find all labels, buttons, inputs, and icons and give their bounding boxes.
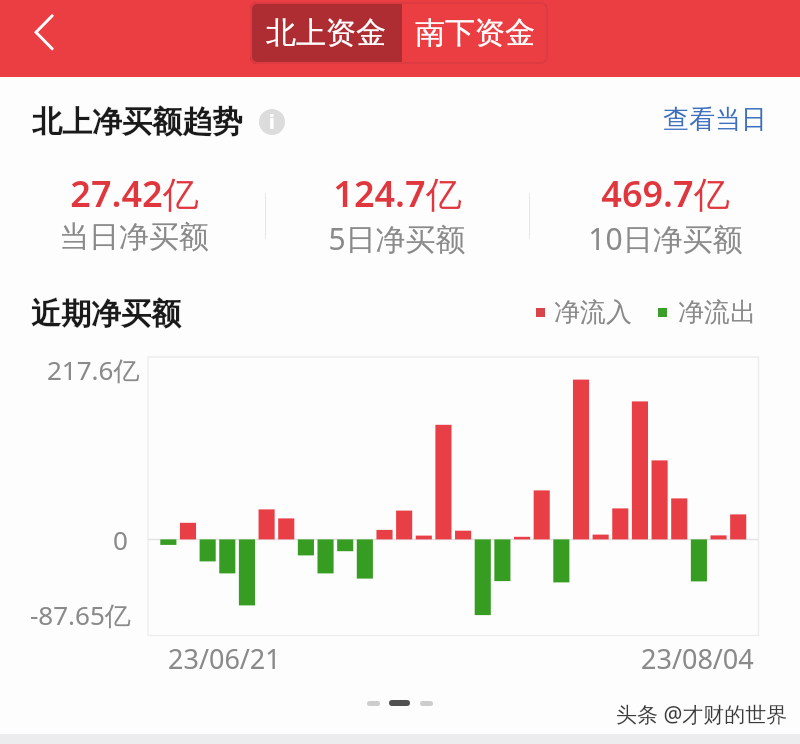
staticText: 当日净买额 bbox=[59, 218, 209, 256]
staticText: 124.7亿 bbox=[333, 169, 462, 218]
staticText: 查看当日 bbox=[663, 103, 767, 136]
button[interactable]: 北上净买额趋势 bbox=[32, 103, 242, 141]
staticText: 10日净买额 bbox=[588, 218, 743, 259]
button[interactable]: Page 1 bbox=[367, 701, 380, 706]
staticText: 27.42亿 bbox=[70, 169, 199, 218]
staticText: 北上资金 bbox=[266, 14, 386, 52]
button[interactable]: 124.7亿 bbox=[264, 169, 530, 259]
staticText: -87.65亿 bbox=[30, 597, 131, 633]
staticText: 净流入 bbox=[554, 296, 632, 329]
staticText: 南下资金 bbox=[415, 14, 535, 52]
button[interactable]: 查看当日 bbox=[663, 103, 767, 136]
button[interactable]: Back bbox=[12, 10, 57, 55]
staticText: i bbox=[269, 109, 275, 135]
staticText: 23/06/21 bbox=[168, 640, 281, 677]
staticText: 净流出 bbox=[678, 296, 756, 329]
button[interactable]: Page 3 bbox=[420, 701, 433, 706]
button[interactable]: Info bbox=[259, 109, 285, 135]
staticText: 23/08/04 bbox=[641, 640, 754, 677]
button[interactable]: 北上资金 bbox=[250, 2, 402, 64]
button[interactable]: 469.7亿 bbox=[532, 169, 798, 259]
staticText: 头条 @才财的世界 bbox=[616, 700, 788, 729]
button[interactable]: 南下资金 bbox=[402, 2, 548, 64]
button[interactable]: 27.42亿 bbox=[1, 169, 267, 256]
staticText: 近期净买额 bbox=[31, 295, 181, 333]
staticText: 217.6亿 bbox=[47, 352, 140, 388]
staticText: 469.7亿 bbox=[601, 169, 730, 218]
staticText: 北上净买额趋势 bbox=[32, 103, 242, 141]
staticText: 5日净买额 bbox=[328, 218, 466, 259]
staticText: 0 bbox=[113, 522, 128, 557]
button[interactable]: Page 2 bbox=[389, 700, 410, 706]
